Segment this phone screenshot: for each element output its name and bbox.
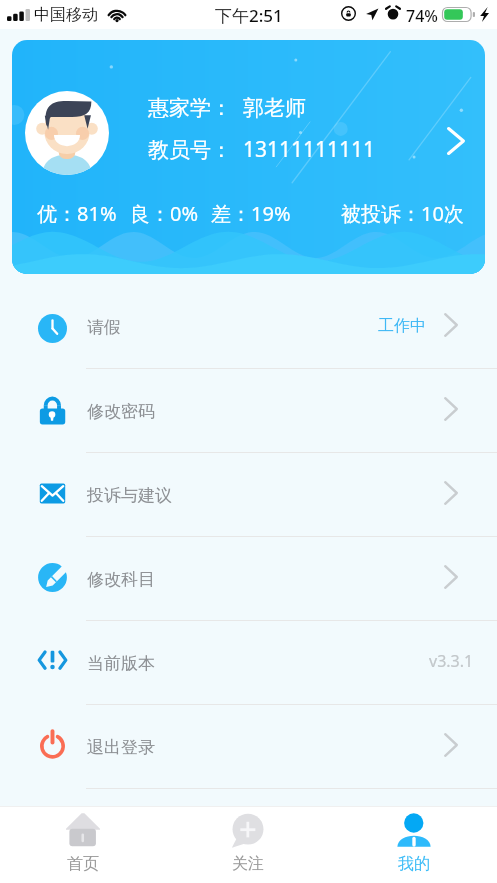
staticText: 良：0% <box>130 200 199 227</box>
staticText: 投诉与建议 <box>87 485 172 506</box>
button[interactable]: 修改科目 <box>0 537 497 621</box>
button[interactable]: 惠家学： 郭老师 <box>12 40 485 274</box>
staticText: 优：81% <box>37 200 117 227</box>
staticText: 请假 <box>87 317 121 338</box>
button[interactable]: 请假 <box>0 285 497 369</box>
staticText: 当前版本 <box>87 653 155 674</box>
button[interactable]: 关注 <box>165 807 331 883</box>
other: 个人信息 <box>447 127 465 155</box>
staticText: 74% <box>406 5 438 27</box>
staticText: 惠家学： 郭老师 <box>148 93 306 122</box>
staticText: 差：19% <box>211 200 291 227</box>
button[interactable]: 修改密码 <box>0 369 497 453</box>
button[interactable]: 当前版本 <box>0 621 497 705</box>
staticText: 教员号： 13111111111 <box>148 135 376 164</box>
button[interactable]: 投诉与建议 <box>0 453 497 537</box>
button[interactable]: 首页 <box>0 807 165 883</box>
staticText: 我的 <box>398 854 430 874</box>
staticText: 修改密码 <box>87 401 155 422</box>
button[interactable]: 我的 <box>331 807 497 883</box>
staticText: v3.3.1 <box>429 650 474 672</box>
staticText: 中国移动 <box>34 5 98 25</box>
staticText: 关注 <box>232 854 264 874</box>
button[interactable]: 退出登录 <box>0 705 497 789</box>
staticText: 修改科目 <box>87 569 155 590</box>
staticText: 被投诉：10次 <box>341 200 464 227</box>
staticText: 退出登录 <box>87 737 155 758</box>
staticText: 首页 <box>67 854 99 874</box>
staticText: 工作中 <box>378 316 426 336</box>
staticText: 下午2:51 <box>215 4 283 27</box>
